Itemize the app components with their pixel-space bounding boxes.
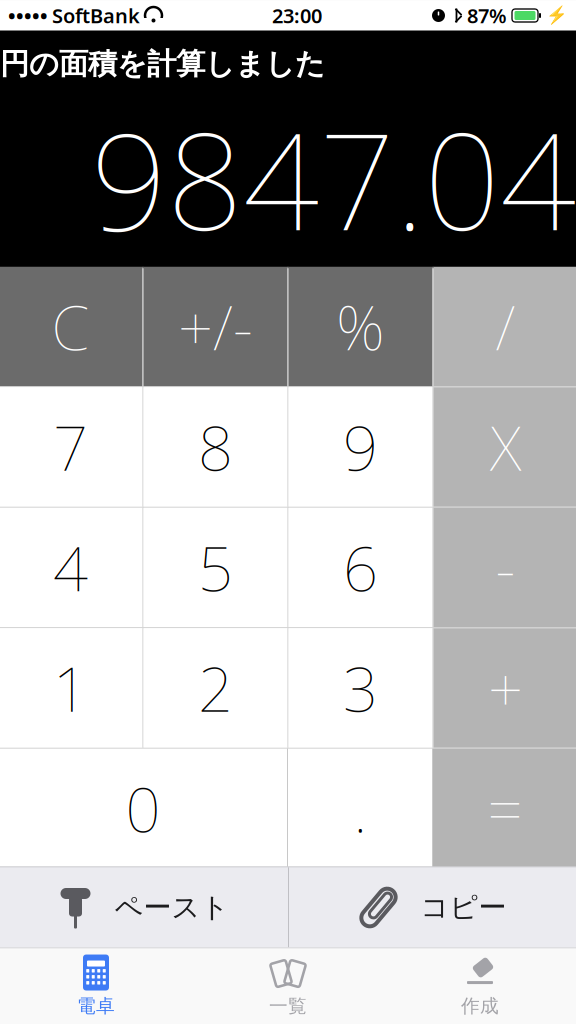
staticText: C bbox=[51, 286, 89, 367]
staticText: 3 bbox=[343, 647, 378, 729]
button[interactable]: % bbox=[288, 267, 432, 386]
staticText: +/- bbox=[178, 286, 253, 367]
button[interactable]: 5 bbox=[143, 508, 287, 627]
staticText: ⚡ bbox=[546, 6, 568, 25]
staticText: 9 bbox=[343, 406, 378, 488]
staticText: SoftBank bbox=[52, 2, 140, 29]
staticText: 円の面積を計算しました bbox=[0, 46, 325, 82]
button[interactable]: X bbox=[433, 387, 576, 507]
staticText: 1 bbox=[53, 647, 88, 729]
button[interactable]: + bbox=[433, 628, 576, 748]
button[interactable]: 7 bbox=[0, 387, 142, 507]
button[interactable]: 2 bbox=[143, 628, 287, 748]
staticText: % bbox=[336, 286, 385, 367]
button[interactable]: 9 bbox=[288, 387, 432, 507]
staticText: 0 bbox=[125, 768, 160, 849]
button[interactable]: ペースト bbox=[0, 867, 288, 947]
staticText: + bbox=[488, 647, 523, 729]
staticText: 5 bbox=[198, 527, 233, 608]
staticText: 作成 bbox=[461, 994, 499, 1017]
staticText: . bbox=[353, 768, 366, 849]
button[interactable]: 3 bbox=[288, 628, 432, 748]
staticText: 8 bbox=[198, 406, 233, 488]
staticText: = bbox=[487, 768, 522, 849]
button[interactable]: 1 bbox=[0, 628, 142, 748]
staticText: - bbox=[495, 527, 515, 608]
button[interactable]: 4 bbox=[0, 508, 142, 627]
staticText: 4 bbox=[53, 527, 88, 608]
staticText: X bbox=[490, 406, 521, 488]
staticText: 一覧 bbox=[269, 994, 307, 1017]
button[interactable]: . bbox=[288, 749, 432, 868]
button[interactable]: 作成 bbox=[384, 948, 576, 1023]
button[interactable]: / bbox=[433, 267, 576, 386]
staticText: 2 bbox=[198, 647, 233, 729]
staticText: 23:00 bbox=[272, 2, 322, 29]
button[interactable]: コピー bbox=[289, 867, 576, 947]
button[interactable]: 6 bbox=[288, 508, 432, 627]
staticText: 7 bbox=[53, 406, 88, 488]
button[interactable]: +/- bbox=[143, 267, 287, 386]
button[interactable]: 一覧 bbox=[192, 948, 384, 1023]
staticText: 電卓 bbox=[77, 994, 115, 1017]
button[interactable]: 8 bbox=[143, 387, 287, 507]
staticText: 9847.04 bbox=[91, 90, 576, 267]
staticText: 87% bbox=[467, 2, 507, 29]
staticText: / bbox=[495, 286, 515, 367]
staticText: 6 bbox=[343, 527, 378, 608]
button[interactable]: C bbox=[0, 267, 142, 386]
button[interactable]: 0 bbox=[0, 749, 287, 868]
staticText: ••••• bbox=[8, 2, 48, 29]
button[interactable]: = bbox=[433, 749, 576, 868]
button[interactable]: 電卓 bbox=[0, 948, 192, 1023]
staticText: ペースト bbox=[114, 890, 229, 925]
staticText: コピー bbox=[420, 890, 506, 925]
